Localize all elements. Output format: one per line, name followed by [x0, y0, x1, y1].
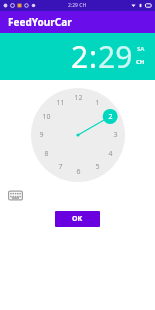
staticText: 2:29 CH	[68, 2, 87, 9]
staticText: 6	[76, 167, 81, 177]
staticText: 7	[58, 162, 63, 172]
button[interactable]: SA	[137, 45, 145, 53]
staticText: 2	[71, 36, 89, 77]
button[interactable]: CH	[136, 58, 145, 66]
staticText: FeedYourCar	[8, 15, 72, 29]
staticText: 2	[108, 112, 113, 122]
button[interactable]: Switch to text input mode	[8, 190, 23, 201]
staticText: CH	[136, 58, 145, 66]
staticText: 29	[98, 36, 133, 77]
button[interactable]: 12	[31, 88, 125, 182]
staticText: 12	[74, 93, 83, 103]
staticText: 5	[95, 162, 100, 172]
staticText: 10	[42, 112, 51, 122]
staticText: 4	[108, 149, 113, 159]
staticText: 1	[95, 98, 100, 108]
staticText: 11	[56, 98, 65, 108]
button[interactable]: OK	[55, 211, 100, 227]
staticText: :	[89, 36, 98, 77]
staticText: 3	[113, 130, 118, 140]
staticText: 8	[44, 149, 49, 159]
staticText: 9	[39, 130, 44, 140]
staticText: OK	[72, 214, 83, 224]
staticText: SA	[137, 45, 145, 53]
button[interactable]: 2	[71, 36, 133, 77]
